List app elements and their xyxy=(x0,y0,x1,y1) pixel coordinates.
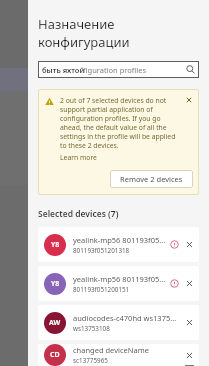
button[interactable]: CD xyxy=(38,344,199,366)
button[interactable]: Dismiss xyxy=(185,96,193,104)
button[interactable]: Warning xyxy=(170,240,179,249)
button[interactable]: Learn more xyxy=(60,153,97,162)
button[interactable]: Y8 xyxy=(38,266,199,301)
staticText: AW xyxy=(49,318,61,328)
staticText: 801193f051201318 xyxy=(73,246,130,255)
button[interactable]: Remove device xyxy=(185,318,194,327)
staticText: audiocodes-c470hd ws13753108 xyxy=(73,313,179,323)
staticText: CD xyxy=(50,350,60,360)
button[interactable]: Y8 xyxy=(38,227,199,262)
staticText: Y8 xyxy=(51,240,60,250)
staticText: yealink-mp56 801193f05... xyxy=(73,235,166,245)
staticText: 801193f051200151 xyxy=(73,285,130,294)
staticText: changed deviceName xyxy=(73,345,149,355)
staticText: Назначение конфигурации xyxy=(38,15,209,51)
button[interactable]: Remove device xyxy=(185,240,194,249)
staticText: 2 out of 7 selected devices do not suppo… xyxy=(60,96,181,150)
button[interactable]: Warning xyxy=(170,279,179,288)
other: Search xyxy=(186,65,195,74)
staticText: yealink-mp56 801193f05... xyxy=(73,274,166,284)
button[interactable]: Remove 2 devices xyxy=(110,170,193,188)
staticText: sc13775965 xyxy=(73,356,108,365)
button[interactable]: Remove device xyxy=(185,279,194,288)
staticText: ws13753108 xyxy=(73,324,110,333)
button[interactable]: AW xyxy=(38,305,199,340)
button[interactable]: быть яхтой xyxy=(38,61,199,78)
staticText: Y8 xyxy=(51,279,60,289)
staticText: figuration profiles xyxy=(83,65,147,75)
staticText: Remove 2 devices xyxy=(120,174,183,184)
staticText: Selected devices (7) xyxy=(38,208,119,220)
staticText: быть яхтой xyxy=(42,65,85,75)
button[interactable]: Remove device xyxy=(185,351,194,360)
